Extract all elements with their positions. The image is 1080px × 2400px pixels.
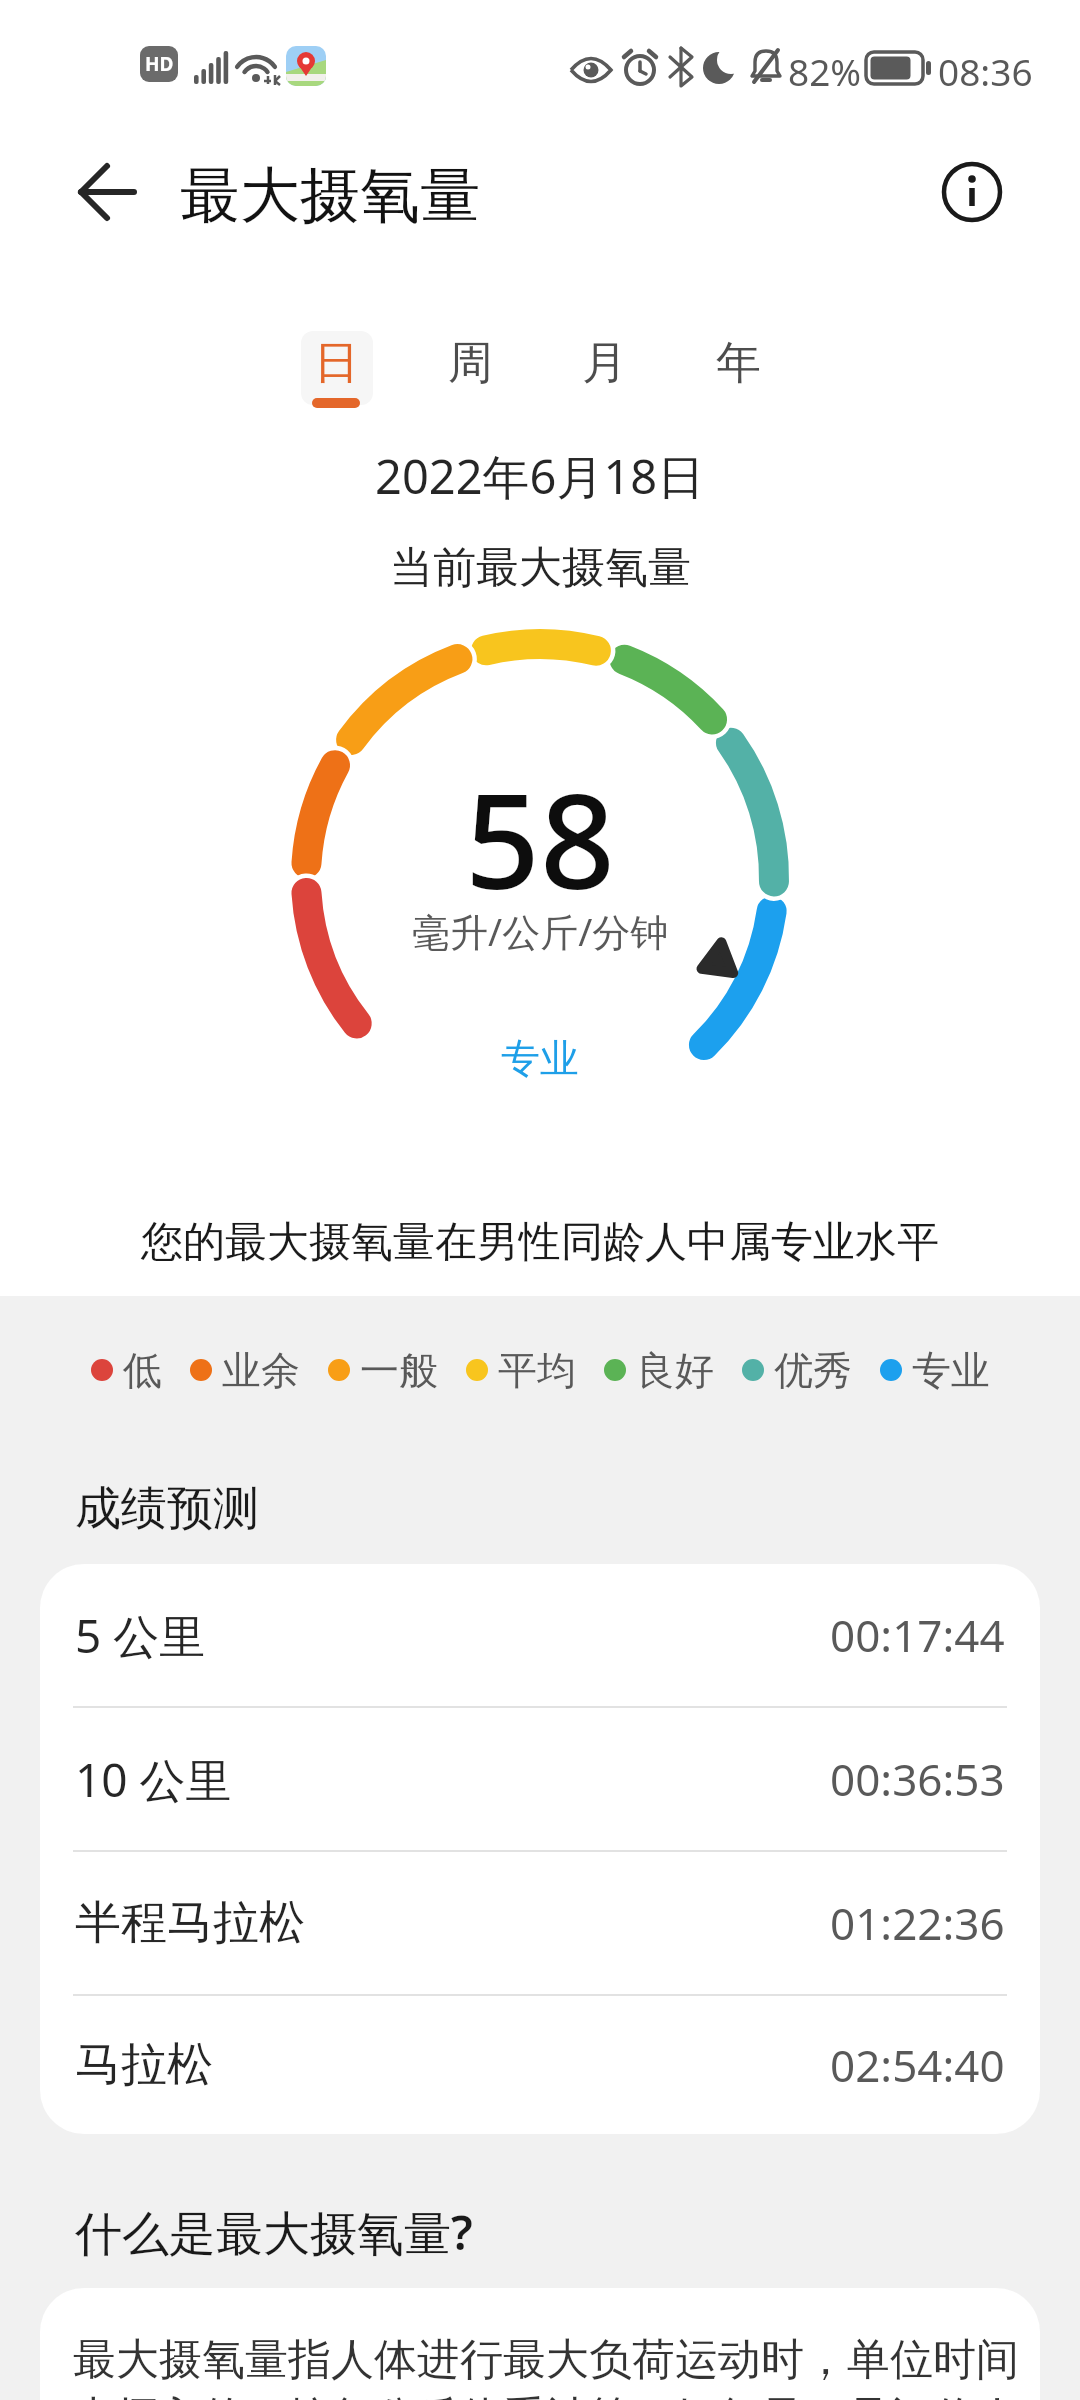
button[interactable]: 最大摄氧量指人体进行最大负荷运动时，单位时间内摄入的（按每公斤体重计算）氧气量，… <box>40 2288 1040 2400</box>
staticText: 专业 <box>501 1034 579 1083</box>
staticText: 毫升/公斤/分钟 <box>412 905 669 957</box>
button[interactable] <box>928 148 1016 236</box>
staticText: 优秀 <box>774 1346 852 1395</box>
staticText: 一般 <box>360 1346 438 1395</box>
staticText: 00:17:44 <box>830 1605 1005 1665</box>
button[interactable]: 半程马拉松 <box>40 1852 1040 1994</box>
staticText: 最大摄氧量指人体进行最大负荷运动时，单位时间内摄入的（按每公斤体重计算）氧气量，… <box>73 2333 1023 2400</box>
staticText: 08:36 <box>938 46 1033 96</box>
staticText: 半程马拉松 <box>75 1894 305 1952</box>
staticText: 您的最大摄氧量在男性同龄人中属专业水平 <box>141 1216 939 1269</box>
button[interactable]: 月 <box>544 320 664 406</box>
staticText: 82% <box>788 46 862 96</box>
staticText: 5 公里 <box>75 1604 206 1667</box>
staticText: 当前最大摄氧量 <box>390 541 691 595</box>
button[interactable]: 年 <box>678 320 798 406</box>
staticText: 业余 <box>222 1346 300 1395</box>
staticText: 00:36:53 <box>830 1749 1005 1809</box>
staticText: 月 <box>582 335 627 392</box>
staticText: 平均 <box>498 1346 576 1395</box>
staticText: 01:22:36 <box>830 1893 1005 1953</box>
button[interactable]: 10 公里 <box>40 1708 1040 1850</box>
staticText: 日 <box>314 335 359 392</box>
staticText: 良好 <box>636 1346 714 1395</box>
staticText: 10 公里 <box>75 1748 232 1811</box>
staticText: 马拉松 <box>75 2036 213 2094</box>
staticText: 专业 <box>912 1346 990 1395</box>
staticText: 年 <box>716 335 761 392</box>
button[interactable]: 周 <box>410 320 530 406</box>
staticText: 最大摄氧量 <box>180 158 480 234</box>
staticText: 低 <box>123 1346 162 1395</box>
button[interactable]: 马拉松 <box>40 1996 1040 2134</box>
button[interactable] <box>62 152 152 232</box>
staticText: 成绩预测 <box>75 1480 259 1538</box>
button[interactable]: 5 公里 <box>40 1564 1040 1706</box>
staticText: 周 <box>448 335 493 392</box>
staticText: 2022年6月18日 <box>375 444 705 508</box>
staticText: 58 <box>465 749 615 927</box>
button[interactable]: 日 <box>276 320 396 406</box>
staticText: HD <box>145 51 174 77</box>
staticText: 02:54:40 <box>830 2035 1005 2095</box>
staticText: 什么是最大摄氧量? <box>75 2200 473 2264</box>
